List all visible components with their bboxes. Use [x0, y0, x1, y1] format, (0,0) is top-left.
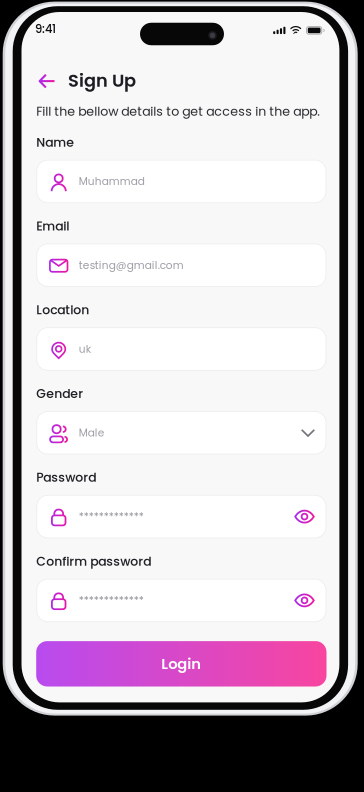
staticText: Email [36, 217, 69, 235]
staticText: Name [36, 134, 74, 151]
button[interactable]: Male [36, 411, 326, 455]
staticText: Sign Up [68, 68, 136, 93]
staticText: Gender [36, 385, 83, 402]
staticText: testing@gmail.com [79, 258, 184, 272]
staticText: Male [79, 425, 105, 440]
staticText: Confirm password [36, 553, 151, 570]
button[interactable]: Back [36, 70, 58, 92]
staticText: Fill the bellow details to get access in… [36, 103, 320, 120]
button[interactable]: Muhammad [36, 159, 326, 203]
staticText: Password [36, 469, 96, 486]
button[interactable]: uk [36, 327, 326, 371]
staticText: uk [79, 342, 91, 356]
staticText: 9:41 [35, 21, 56, 37]
staticText: Location [36, 301, 89, 319]
button[interactable]: ************* [36, 495, 326, 538]
staticText: ************* [79, 593, 144, 608]
button[interactable]: ************* [36, 578, 326, 622]
button[interactable]: testing@gmail.com [36, 243, 326, 287]
staticText: ************* [79, 509, 144, 524]
button[interactable]: Login [36, 641, 326, 686]
staticText: Login [161, 653, 201, 674]
staticText: Muhammad [79, 174, 145, 189]
